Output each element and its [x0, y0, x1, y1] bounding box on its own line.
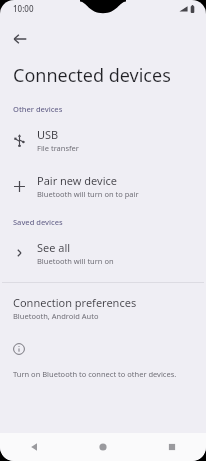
staticText: Other devices: [13, 104, 63, 114]
other: USB: [8, 129, 30, 151]
button[interactable]: Connection preferences: [0, 293, 206, 323]
staticText: Bluetooth will turn on to pair: [37, 189, 139, 199]
other: Information: [9, 339, 29, 359]
button[interactable]: Home: [68, 433, 137, 461]
staticText: See all: [37, 240, 71, 255]
staticText: File transfer: [37, 143, 79, 153]
button[interactable]: See all: [0, 236, 206, 270]
button[interactable]: Recent apps: [137, 433, 206, 461]
other: See all: [8, 242, 30, 264]
staticText: Turn on Bluetooth to connect to other de…: [13, 369, 177, 379]
button[interactable]: USB: [0, 123, 206, 157]
staticText: Pair new device: [37, 173, 118, 188]
button[interactable]: Pair new device: [0, 169, 206, 203]
staticText: Bluetooth, Android Auto: [13, 311, 99, 321]
staticText: Connected devices: [13, 63, 171, 88]
staticText: Connection preferences: [13, 295, 137, 310]
button[interactable]: Back: [4, 23, 36, 55]
other: Pair new device: [8, 175, 30, 197]
staticText: 10:00: [13, 3, 34, 14]
staticText: USB: [37, 127, 59, 142]
button[interactable]: Back: [0, 433, 68, 461]
staticText: Bluetooth will turn on: [37, 256, 114, 266]
staticText: Saved devices: [13, 217, 63, 227]
